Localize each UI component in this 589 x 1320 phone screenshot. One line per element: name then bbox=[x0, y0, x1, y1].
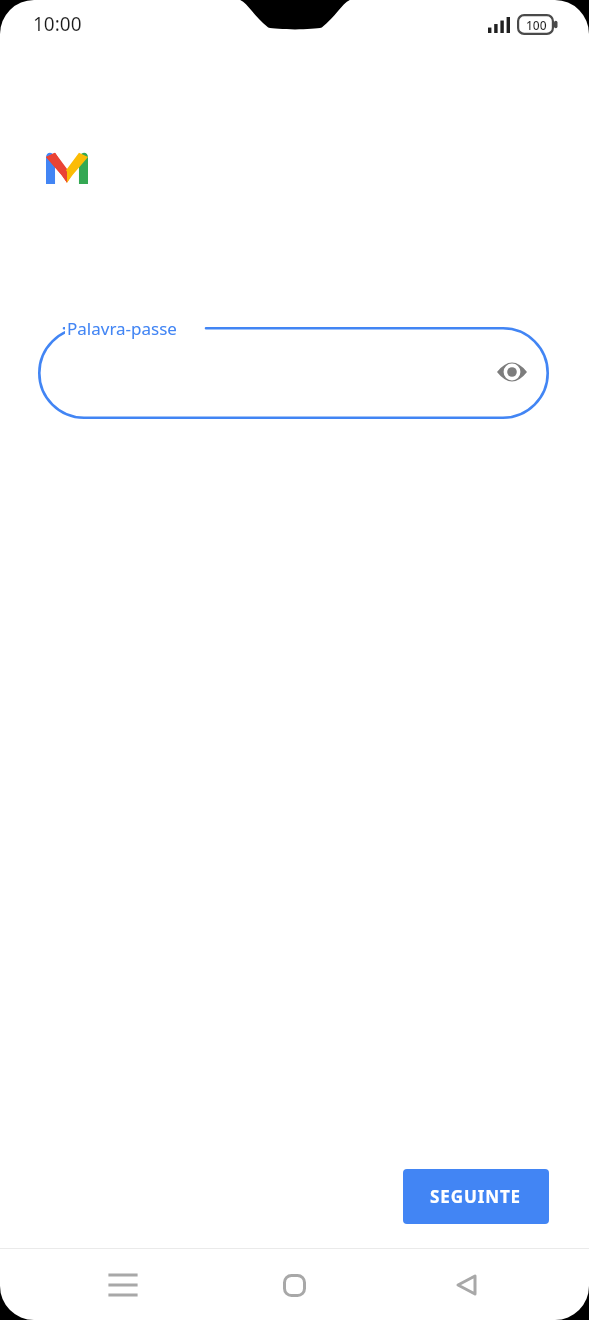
staticText: Palavra-passe bbox=[67, 317, 177, 340]
button[interactable]: Home bbox=[259, 1250, 329, 1320]
button[interactable]: Mostrar palavra-passe bbox=[491, 351, 533, 393]
staticText: 10:00 bbox=[33, 11, 82, 37]
button[interactable]: SEGUINTE bbox=[403, 1169, 549, 1224]
staticText: 100 bbox=[526, 17, 547, 33]
button[interactable]: Back bbox=[431, 1250, 501, 1320]
button[interactable]: Recents bbox=[88, 1250, 158, 1320]
staticText: SEGUINTE bbox=[430, 1185, 522, 1208]
button[interactable] bbox=[38, 327, 549, 419]
